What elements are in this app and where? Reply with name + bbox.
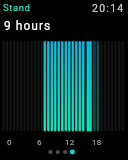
staticText: 6: [37, 138, 42, 147]
staticText: 9 hours: [4, 19, 52, 33]
staticText: 20:14: [92, 2, 125, 14]
staticText: Stand: [3, 2, 31, 13]
staticText: 0: [7, 138, 12, 147]
staticText: 12: [65, 138, 75, 147]
staticText: 18: [92, 138, 102, 147]
